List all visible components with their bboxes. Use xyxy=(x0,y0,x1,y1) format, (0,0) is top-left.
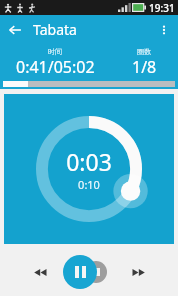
button[interactable]: Previous xyxy=(23,255,57,289)
button[interactable]: More options xyxy=(149,15,178,44)
staticText: 时间 xyxy=(48,47,62,56)
button[interactable]: Next xyxy=(121,255,155,289)
staticText: Tabata xyxy=(33,20,77,39)
staticText: 1/8 xyxy=(132,56,157,78)
button[interactable]: Stop xyxy=(85,261,107,283)
button[interactable]: Pause xyxy=(63,255,97,289)
staticText: 0:10 xyxy=(78,177,100,192)
staticText: 圈数 xyxy=(137,47,151,56)
staticText: 0:41/05:02 xyxy=(16,56,95,78)
staticText: 19:31 xyxy=(149,1,175,15)
staticText: 0:03 xyxy=(66,146,112,177)
button[interactable]: Back xyxy=(0,15,29,44)
